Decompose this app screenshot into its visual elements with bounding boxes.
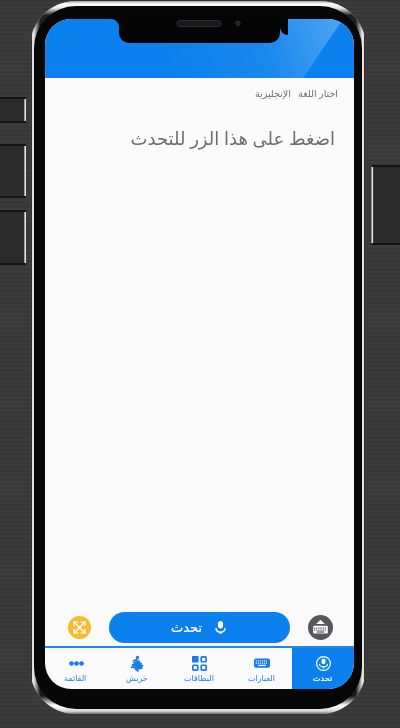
button[interactable]: العبارات	[230, 648, 292, 689]
button[interactable]: البطاقات	[168, 648, 230, 689]
button[interactable]: اختار اللغة الإنجليزية	[253, 86, 340, 101]
button[interactable]: تحدث	[292, 648, 354, 689]
button[interactable]: القائمة	[45, 648, 106, 689]
button[interactable]: خربش	[106, 648, 168, 689]
staticText: خربش	[126, 674, 148, 683]
staticText: اختار اللغة الإنجليزية	[255, 87, 338, 100]
staticText: اضغط على هذا الزر للتحدث	[45, 126, 335, 151]
staticText: تحدث	[313, 674, 333, 683]
button[interactable]: تحدث	[109, 612, 290, 643]
staticText: البطاقات	[184, 674, 214, 683]
button[interactable]: Show keyboard	[308, 615, 333, 640]
staticText: العبارات	[248, 674, 275, 683]
staticText: القائمة	[64, 674, 87, 683]
staticText: تحدث	[171, 620, 203, 635]
button[interactable]: Fullscreen	[68, 616, 91, 639]
